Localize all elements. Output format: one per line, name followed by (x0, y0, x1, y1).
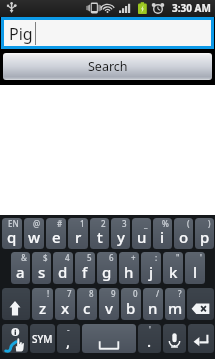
staticText: _ (144, 218, 148, 229)
staticText: v (105, 298, 113, 318)
staticText: ' (149, 324, 151, 335)
staticText: ' (200, 252, 202, 263)
button[interactable]: 6 (97, 252, 117, 284)
staticText: g (102, 262, 112, 282)
button[interactable]: 4 (53, 252, 73, 284)
staticText: u (137, 227, 147, 247)
staticText: 3 (122, 218, 127, 229)
staticText: % (162, 218, 169, 229)
staticText: " (176, 252, 180, 263)
staticText: o (179, 227, 189, 247)
staticText: Pig (9, 23, 33, 45)
button[interactable]: ' (185, 252, 205, 284)
button[interactable]: 1 (68, 218, 88, 249)
staticText: ! (47, 288, 50, 299)
staticText: . (147, 331, 152, 351)
button[interactable]: Enter (188, 324, 214, 353)
staticText: c (83, 298, 91, 318)
button[interactable]: % (153, 218, 172, 249)
staticText: ) (208, 218, 211, 229)
button[interactable]: Space (82, 324, 136, 353)
staticText: @ (33, 218, 41, 229)
staticText: p (200, 227, 210, 247)
button[interactable]: Shift (2, 288, 30, 320)
staticText: a (16, 262, 25, 282)
staticText: 7 (67, 288, 72, 299)
staticText: i (160, 227, 165, 247)
staticText: h (124, 262, 134, 282)
button[interactable]: Keyboard settings (2, 324, 28, 353)
staticText: : (155, 252, 158, 263)
staticText: w (28, 227, 41, 247)
button[interactable]: 0 (121, 288, 141, 320)
button[interactable]: 8 (77, 288, 97, 320)
staticText: j (149, 262, 154, 282)
button[interactable]: ? (165, 288, 185, 320)
staticText: k (169, 262, 178, 282)
button[interactable]: : (141, 252, 161, 284)
staticText: t (97, 227, 103, 247)
staticText: l (193, 262, 198, 282)
staticText: 0 (133, 288, 138, 299)
staticText: / (156, 288, 160, 299)
button[interactable]: ' (138, 324, 161, 353)
button[interactable]: _ (132, 218, 151, 249)
button[interactable]: 3 (111, 218, 130, 249)
staticText: f (82, 262, 88, 282)
staticText: 1 (80, 218, 85, 229)
staticText: 6 (109, 252, 114, 263)
staticText: SYM (32, 332, 53, 346)
button[interactable]: + (119, 252, 139, 284)
button[interactable]: # (46, 218, 66, 249)
staticText: , (66, 331, 71, 351)
staticText: q (7, 227, 17, 247)
staticText: EN (8, 218, 19, 229)
staticText: & (21, 252, 27, 263)
button[interactable]: EN (2, 218, 22, 249)
staticText: b (126, 298, 136, 318)
button[interactable]: " (163, 252, 183, 284)
button[interactable]: / (143, 288, 163, 320)
staticText: y (117, 227, 125, 247)
button[interactable]: & (11, 252, 30, 284)
staticText: # (57, 218, 63, 229)
staticText: ( (187, 218, 190, 229)
staticText: $ (43, 252, 48, 263)
staticText: s (38, 262, 46, 282)
staticText: Search (88, 58, 128, 75)
button[interactable]: 9 (99, 288, 119, 320)
staticText: x (61, 298, 70, 318)
staticText: z (39, 298, 47, 318)
button[interactable]: 2 (90, 218, 109, 249)
staticText: m (168, 298, 183, 318)
button[interactable]: Voice input (163, 324, 186, 353)
button[interactable]: ! (32, 288, 53, 320)
staticText: + (131, 252, 136, 263)
button[interactable]: - (57, 324, 80, 353)
button[interactable]: $ (32, 252, 51, 284)
staticText: - (67, 324, 70, 335)
staticText: n (148, 298, 158, 318)
staticText: r (75, 227, 82, 247)
staticText: 2 (101, 218, 106, 229)
button[interactable]: SYM (30, 324, 55, 353)
button[interactable]: 5 (75, 252, 95, 284)
staticText: 8 (89, 288, 94, 299)
staticText: 3:30 AM (172, 1, 211, 15)
staticText: ? (178, 288, 182, 299)
staticText: 9 (111, 288, 116, 299)
button[interactable]: Pig (4, 20, 211, 46)
staticText: d (58, 262, 68, 282)
button[interactable]: 7 (55, 288, 75, 320)
button[interactable]: ) (195, 218, 214, 249)
button[interactable]: @ (24, 218, 44, 249)
button[interactable]: Search (3, 53, 212, 80)
button[interactable]: Backspace (187, 288, 214, 320)
staticText: e (52, 227, 61, 247)
staticText: 5 (87, 252, 92, 263)
staticText: 4 (65, 252, 70, 263)
button[interactable]: ( (174, 218, 193, 249)
